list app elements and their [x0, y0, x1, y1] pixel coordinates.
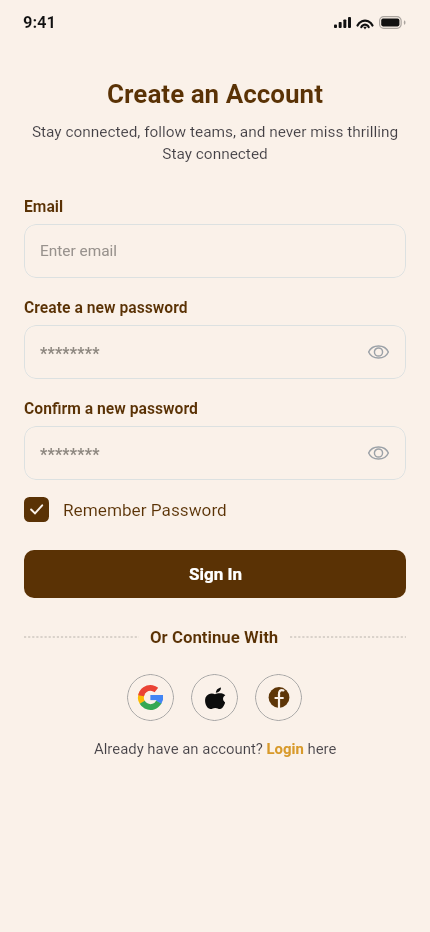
staticText: ******** — [40, 344, 100, 363]
button[interactable]: ******** — [24, 325, 406, 379]
staticText: Enter email — [40, 242, 117, 260]
staticText: Create an Account — [0, 79, 430, 109]
button[interactable]: Already have an account? Login here — [94, 740, 337, 757]
button[interactable]: Sign in with Apple — [191, 674, 238, 721]
button[interactable]: Show password — [366, 441, 390, 465]
button[interactable]: Show password — [366, 340, 390, 364]
button[interactable]: ******** — [24, 426, 406, 480]
staticText: Confirm a new password — [24, 399, 198, 417]
button[interactable]: Sign in with Google — [127, 674, 174, 721]
staticText: Email — [24, 197, 64, 215]
staticText: Stay connected, follow teams, and never … — [20, 123, 410, 163]
staticText: Sign In — [189, 564, 242, 584]
button[interactable]: Sign In — [24, 550, 406, 598]
button[interactable]: Remember Password — [24, 495, 227, 524]
staticText: Or Continue With — [150, 627, 279, 647]
staticText: Remember Password — [63, 500, 227, 520]
button[interactable]: Enter email — [24, 224, 406, 278]
staticText: Create a new password — [24, 298, 188, 316]
button[interactable]: Sign in with Facebook — [255, 674, 302, 721]
staticText: 9:41 — [23, 13, 57, 32]
staticText: ******** — [40, 445, 100, 464]
